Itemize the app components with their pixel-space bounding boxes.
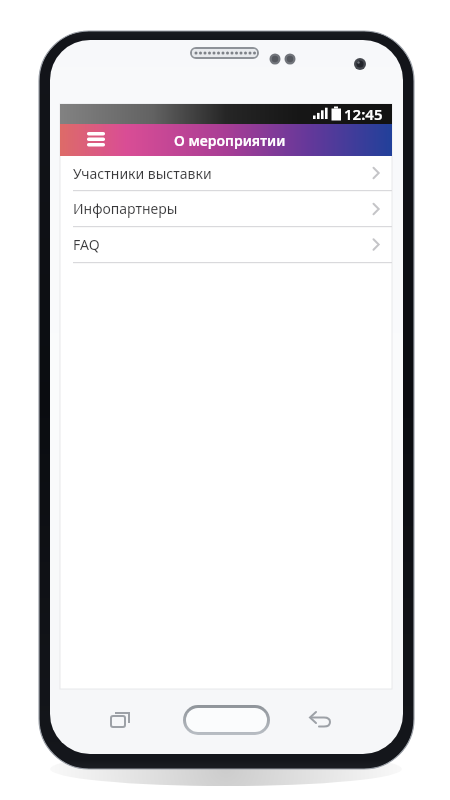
button[interactable]	[303, 706, 337, 734]
button[interactable]	[103, 706, 137, 734]
button[interactable]: Инфопартнеры	[60, 190, 392, 226]
staticText: О мероприятии	[174, 131, 286, 150]
staticText: FAQ	[73, 235, 100, 254]
staticText: Инфопартнеры	[73, 199, 178, 218]
staticText: 12:45	[344, 104, 383, 124]
button[interactable]	[80, 126, 114, 154]
button[interactable]	[183, 705, 270, 735]
button[interactable]: FAQ	[60, 226, 392, 262]
button[interactable]: Участники выставки	[60, 156, 392, 190]
staticText: Участники выставки	[73, 164, 212, 183]
